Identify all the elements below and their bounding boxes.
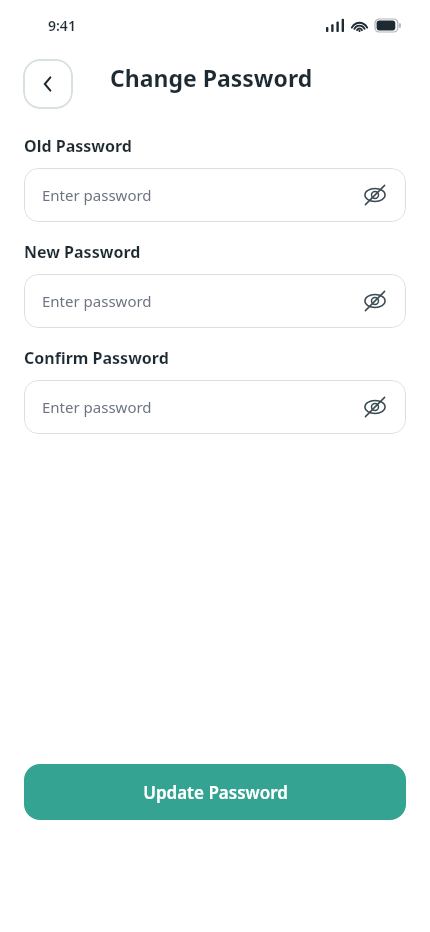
staticText: 9:41	[48, 16, 76, 35]
staticText: Confirm Password	[24, 347, 169, 369]
staticText: New Password	[24, 241, 141, 263]
staticText: Old Password	[24, 135, 132, 157]
staticText: Enter password	[42, 397, 152, 417]
staticText: Enter password	[42, 291, 152, 311]
button[interactable]: Back	[23, 59, 73, 109]
button[interactable]: Enter password	[24, 380, 406, 434]
button[interactable]: Show password	[358, 390, 392, 424]
staticText: Update Password	[143, 781, 288, 804]
button[interactable]: Show password	[358, 178, 392, 212]
button[interactable]: Update Password	[24, 764, 406, 820]
staticText: Enter password	[42, 185, 152, 205]
button[interactable]: Enter password	[24, 168, 406, 222]
staticText: Change Password	[110, 62, 313, 93]
button[interactable]: Show password	[358, 284, 392, 318]
button[interactable]: Enter password	[24, 274, 406, 328]
